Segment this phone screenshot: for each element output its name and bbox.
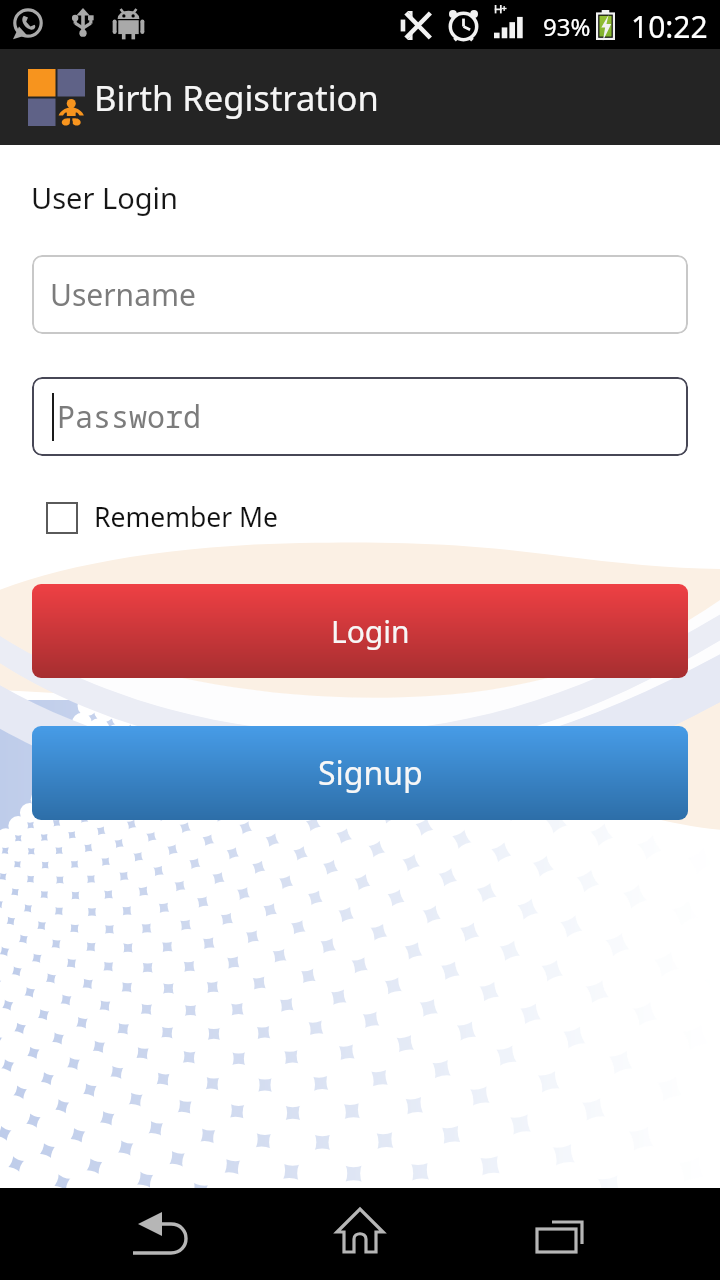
staticText: User Login — [31, 178, 178, 217]
button[interactable]: Signup — [32, 726, 688, 820]
button[interactable]: Login — [32, 584, 688, 678]
staticText: Signup — [318, 751, 423, 795]
staticText: Username — [50, 274, 196, 315]
staticText: Remember Me — [94, 499, 278, 535]
button[interactable]: Password — [32, 377, 688, 456]
button[interactable]: Recent apps — [525, 1188, 645, 1280]
staticText: Password — [57, 396, 201, 437]
staticText: Birth Registration — [94, 74, 379, 121]
button[interactable]: Remember Me — [46, 495, 286, 539]
button[interactable]: Username — [32, 255, 688, 334]
button[interactable]: Home — [302, 1188, 422, 1280]
staticText: Login — [331, 611, 410, 652]
staticText: 10:22 — [631, 6, 708, 47]
staticText: 93% — [543, 10, 591, 43]
button[interactable]: Back — [105, 1188, 225, 1280]
